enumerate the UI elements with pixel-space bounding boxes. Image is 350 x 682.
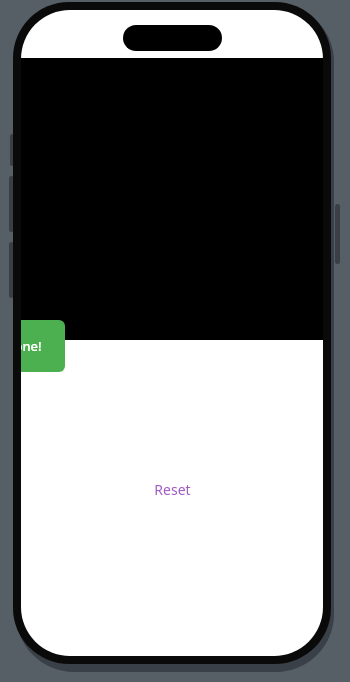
other: Dynamic Island	[123, 25, 222, 51]
staticText: Reset	[154, 480, 191, 499]
staticText: Done!	[21, 337, 42, 355]
other: Volume down	[9, 242, 14, 298]
button[interactable]: Done!	[21, 320, 65, 372]
other: Power	[335, 204, 340, 264]
other: Volume up	[9, 176, 14, 232]
button[interactable]: Reset	[142, 474, 203, 505]
other: Silent switch	[10, 134, 15, 166]
